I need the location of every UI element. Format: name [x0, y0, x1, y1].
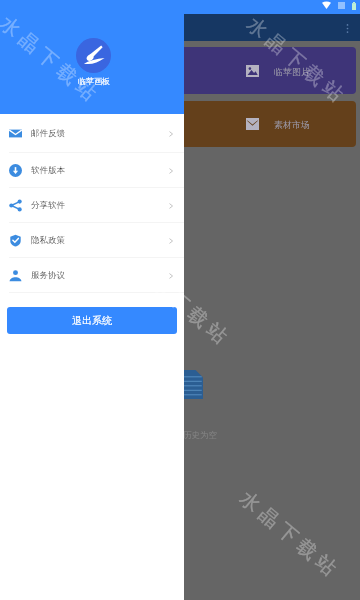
- staticText: 服务协议: [31, 270, 65, 281]
- staticText: 隐私政策: [31, 235, 65, 246]
- staticText: 退出系统: [72, 314, 112, 327]
- staticText: 水晶下载站: [0, 11, 106, 109]
- staticText: 水晶下载站: [126, 254, 237, 352]
- button[interactable]: 退出系统: [7, 307, 177, 334]
- button[interactable]: 软件版本: [0, 153, 184, 188]
- button[interactable]: 素材市场: [4, 101, 356, 147]
- button[interactable]: 分享软件: [0, 188, 184, 223]
- staticText: 软件版本: [31, 165, 65, 176]
- staticText: 临苹图片: [274, 66, 310, 77]
- button[interactable]: 临苹图片: [4, 47, 356, 94]
- staticText: 分享软件: [31, 200, 65, 211]
- staticText: 素材市场: [274, 119, 310, 130]
- staticText: 临苹画板: [78, 76, 110, 86]
- staticText: 邮件反馈: [31, 128, 65, 139]
- staticText: 水晶下载站: [235, 486, 346, 584]
- button[interactable]: More options: [337, 18, 357, 38]
- staticText: 水晶下载站: [242, 12, 353, 110]
- button[interactable]: 服务协议: [0, 258, 184, 293]
- staticText: 历史为空: [183, 430, 217, 441]
- button[interactable]: 邮件反馈: [0, 114, 184, 153]
- button[interactable]: 隐私政策: [0, 223, 184, 258]
